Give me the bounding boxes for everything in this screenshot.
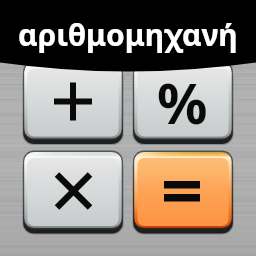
button[interactable] (0, 0, 256, 256)
